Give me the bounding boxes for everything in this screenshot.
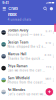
staticText: 8:30 <box>44 53 51 57</box>
button[interactable]: Priya Raman <box>0 62 56 74</box>
staticText: 4 unread chats <box>8 18 32 21</box>
staticText: Marcus Hall <box>7 52 26 56</box>
staticText: Sun <box>45 89 51 92</box>
button[interactable]: Marcus Hall <box>0 50 56 62</box>
staticText: Can we move the call up? <box>7 69 45 72</box>
staticText: Yest <box>45 65 51 68</box>
staticText: Design Team <box>7 40 28 44</box>
staticText: Mon <box>45 77 51 80</box>
button[interactable]: Design Team <box>0 38 56 50</box>
button[interactable]: Search <box>42 6 48 12</box>
staticText: 9:41 <box>2 1 8 5</box>
staticText: Nina: shipped the v2 specs <box>7 45 45 48</box>
button[interactable]: Account <box>48 6 54 12</box>
staticText: Ari Mendes <box>7 88 25 92</box>
button[interactable]: Jordan Avery <box>0 26 56 38</box>
button[interactable]: Sam Whitfield <box>0 74 56 86</box>
staticText: 9:12 <box>45 42 51 45</box>
staticText: Inbox <box>8 12 17 17</box>
staticText: Photos from the coast trip <box>7 81 45 84</box>
staticText: 9:41 <box>45 30 51 33</box>
staticText: Chats <box>8 6 18 11</box>
button[interactable]: Ari Mendes <box>0 86 56 98</box>
staticText: Sam Whitfield <box>7 76 29 80</box>
staticText: Sounds good — see you then <box>7 33 45 37</box>
button[interactable]: Menu <box>1 6 7 12</box>
button[interactable]: Compose <box>46 88 53 95</box>
staticText: Let's catch up next week <box>7 93 45 96</box>
staticText: Thanks for the quick update <box>7 57 44 60</box>
staticText: Jordan Avery <box>7 28 28 32</box>
staticText: Priya Raman <box>7 64 27 68</box>
